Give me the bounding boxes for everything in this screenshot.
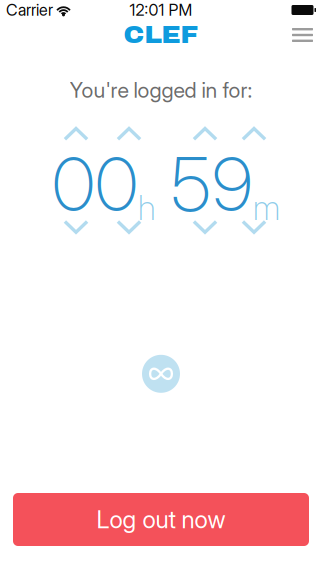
staticText: CLEF (123, 22, 198, 48)
button[interactable]: Increase minutes ones (231, 122, 277, 146)
staticText: 5 (171, 139, 211, 229)
staticText: 12:01 PM (129, 0, 192, 20)
button[interactable]: Menu (283, 20, 322, 50)
button[interactable]: Increase minutes tens (182, 122, 228, 146)
staticText: m (253, 188, 280, 228)
button[interactable]: Decrease minutes tens (182, 215, 228, 239)
button[interactable]: Increase hours ones (106, 122, 152, 146)
staticText: 9 (212, 139, 253, 229)
button[interactable]: Stay logged in forever (138, 351, 184, 397)
staticText: 00 (52, 139, 138, 229)
button[interactable]: Decrease hours tens (53, 215, 99, 239)
button[interactable]: Log out now (13, 493, 309, 546)
button[interactable]: Decrease hours ones (106, 215, 152, 239)
staticText: Log out now (96, 505, 225, 534)
staticText: You're logged in for: (69, 77, 252, 103)
staticText: Carrier (6, 0, 53, 20)
button[interactable]: Increase hours tens (53, 122, 99, 146)
button[interactable]: Decrease minutes ones (231, 215, 277, 239)
staticText: h (138, 188, 156, 228)
